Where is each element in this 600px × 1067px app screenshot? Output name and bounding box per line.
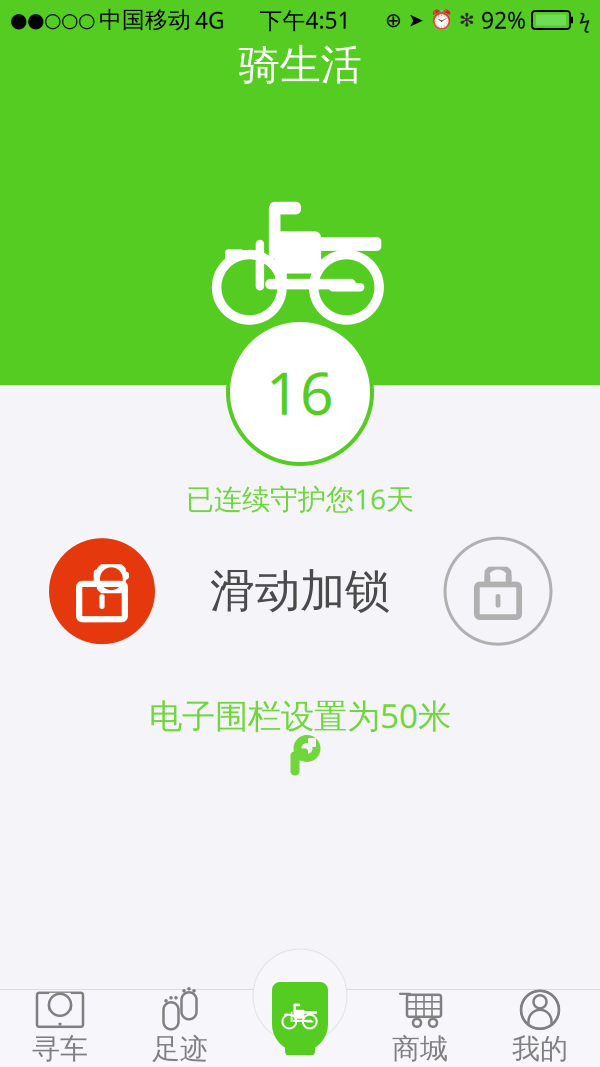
button[interactable]: 足迹 bbox=[120, 984, 240, 1067]
staticText: 商城 bbox=[392, 1032, 448, 1066]
staticText: 下午4:51 bbox=[259, 5, 350, 35]
button[interactable]: 商城 bbox=[360, 984, 480, 1067]
staticText: 滑动加锁 bbox=[210, 563, 390, 619]
staticText: 16 bbox=[266, 353, 334, 431]
staticText: 已连续守护您16天 bbox=[186, 480, 414, 517]
staticText: ϟ bbox=[579, 7, 590, 33]
staticText: 4G bbox=[195, 5, 225, 35]
staticText: ⊕ bbox=[385, 9, 402, 31]
button[interactable]: 解锁 bbox=[46, 535, 158, 647]
button[interactable]: 我的 bbox=[480, 984, 600, 1067]
staticText: 我的 bbox=[512, 1032, 568, 1066]
staticText: ➤ bbox=[408, 9, 424, 31]
staticText: ●●○○○ bbox=[10, 9, 95, 31]
button[interactable]: 电子围栏设置为50米 bbox=[0, 687, 600, 779]
button[interactable]: 骑生活 bbox=[240, 989, 360, 1067]
staticText: 足迹 bbox=[152, 1032, 208, 1066]
button[interactable]: 寻车 bbox=[0, 984, 120, 1067]
staticText: 中国移动 bbox=[99, 6, 191, 34]
staticText: 电子围栏设置为50米 bbox=[149, 693, 451, 737]
staticText: 92% bbox=[481, 5, 526, 35]
staticText: ✻ bbox=[459, 9, 475, 31]
staticText: 骑生活 bbox=[238, 40, 361, 90]
staticText: 寻车 bbox=[32, 1032, 88, 1066]
staticText: ⏰ bbox=[430, 9, 453, 31]
button[interactable]: 加锁 bbox=[442, 535, 554, 647]
